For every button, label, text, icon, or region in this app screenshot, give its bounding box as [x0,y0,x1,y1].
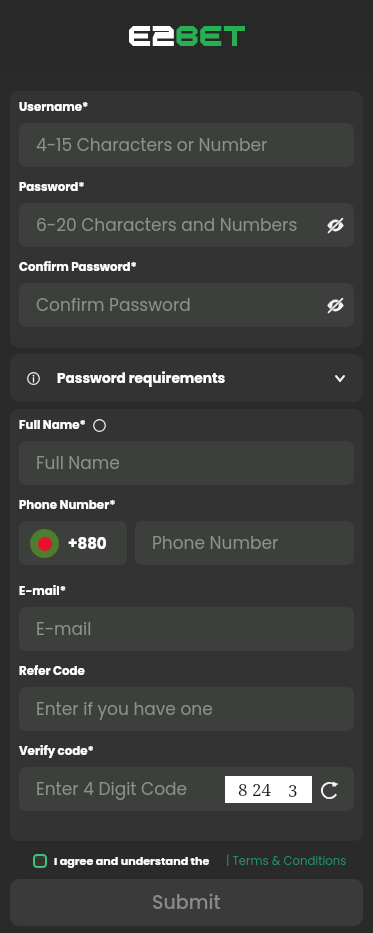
button[interactable]: Submit [10,879,363,926]
staticText: Submit [152,889,221,916]
button[interactable]: 6-20 Characters and Numbers [19,203,354,247]
staticText: Phone Number [152,531,279,555]
staticText: Enter if you have one [36,697,213,721]
staticText: 6-20 Characters and Numbers [36,213,298,237]
staticText: Full Name* [19,417,86,434]
staticText: +880 [68,533,107,554]
button[interactable]: Password requirements [10,354,363,402]
button[interactable]: Show password [320,210,350,240]
staticText: Confirm Password* [19,259,137,276]
button[interactable]: E-mail [19,607,354,651]
staticText: E-mail* [19,583,66,600]
button[interactable]: 4-15 Characters or Number [19,123,354,167]
staticText: 4-15 Characters or Number [36,133,268,157]
staticText: Username* [19,99,89,116]
staticText: 8 24 [238,778,271,801]
staticText: Refer Code [19,663,85,680]
button[interactable]: Show password [320,290,350,320]
staticText: Confirm Password [36,293,191,317]
button[interactable]: Confirm Password [19,283,354,327]
button[interactable]: Enter 4 Digit Code [19,767,354,811]
staticText: Enter 4 Digit Code [36,777,188,801]
button[interactable]: Enter if you have one [19,687,354,731]
button[interactable]: +880 [19,521,127,565]
staticText: Password* [19,179,85,196]
button[interactable]: Refresh captcha [317,778,341,802]
button[interactable]: I agree checkbox [33,854,47,868]
button[interactable]: Phone Number [135,521,354,565]
button[interactable]: | Terms & Conditions [226,853,347,869]
staticText: Password requirements [57,369,226,388]
button[interactable]: Full Name [19,441,354,485]
staticText: Verify code* [19,743,94,760]
staticText: Full Name [36,451,120,475]
staticText: Phone Number* [19,497,116,514]
staticText: E-mail [36,617,92,641]
staticText: 3 [288,779,298,802]
staticText: I agree and understand the [54,853,210,869]
